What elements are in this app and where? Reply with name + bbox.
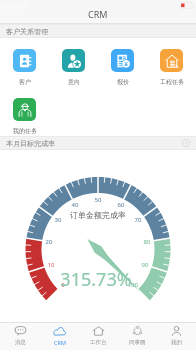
button[interactable]: 工作台 — [79, 323, 118, 350]
staticText: 60 — [112, 201, 130, 209]
button[interactable]: 客户 — [0, 38, 49, 87]
staticText: 意向 — [68, 78, 80, 86]
staticText: 0 — [54, 281, 72, 289]
staticText: 90 — [136, 261, 154, 269]
button[interactable]: 我的任务 — [0, 87, 49, 136]
staticText: 100 — [124, 281, 142, 289]
button[interactable]: 我的 — [157, 323, 196, 350]
staticText: 本月目标完成率 — [6, 139, 55, 148]
staticText: 我的 — [171, 339, 182, 346]
staticText: 20 — [40, 238, 58, 246]
staticText: 工程任务 — [160, 78, 184, 86]
staticText: 报价 — [117, 78, 129, 86]
button[interactable]: 消息 — [0, 323, 40, 350]
staticText: 70 — [129, 216, 147, 224]
button[interactable]: Settings — [181, 138, 191, 148]
staticText: 30 — [49, 216, 67, 224]
staticText: 客户关系管理 — [6, 27, 48, 36]
staticText: CRM — [88, 8, 108, 20]
staticText: 工作台 — [90, 339, 107, 346]
staticText: 80 — [138, 238, 156, 246]
button[interactable]: CRM — [40, 323, 79, 350]
staticText: 10 — [42, 261, 60, 269]
staticText: 订单金额完成率 — [58, 210, 138, 220]
staticText: 消息 — [15, 339, 26, 346]
button[interactable]: 报价 — [98, 38, 147, 87]
button[interactable]: 工程任务 — [147, 38, 196, 87]
staticText: 我的任务 — [13, 127, 37, 135]
staticText: CRM — [54, 339, 66, 346]
button[interactable]: 意向 — [49, 38, 98, 87]
staticText: 315.73% — [46, 267, 146, 292]
button[interactable]: 同事圈 — [118, 323, 157, 350]
staticText: 40 — [66, 201, 84, 209]
staticText: 客户 — [19, 78, 31, 86]
staticText: 同事圈 — [129, 339, 146, 346]
staticText: 50 — [89, 196, 107, 204]
